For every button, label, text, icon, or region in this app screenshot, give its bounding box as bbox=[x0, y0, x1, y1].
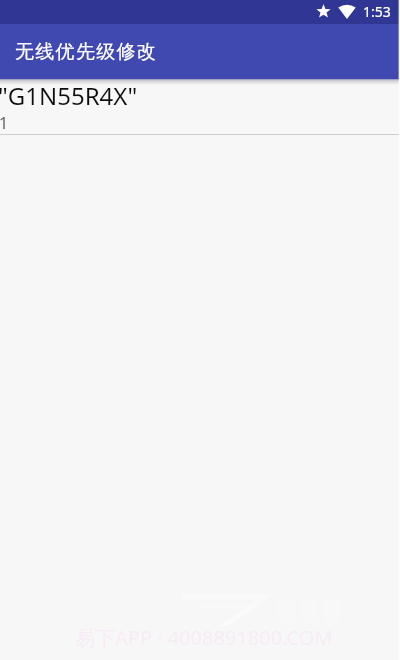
staticText: "G1N55R4X" bbox=[0, 79, 138, 112]
staticText: 无线优先级修改 bbox=[15, 40, 158, 64]
other: Starred bbox=[316, 4, 331, 19]
staticText: 1 bbox=[0, 112, 9, 134]
button[interactable]: 无线优先级修改 bbox=[0, 24, 400, 79]
button[interactable]: "G1N55R4X" bbox=[0, 79, 400, 135]
staticText: 易下APP · 4008891800.COM bbox=[75, 624, 333, 651]
staticText: 1:53 bbox=[363, 2, 391, 21]
other: Wi-Fi signal bbox=[338, 5, 356, 19]
